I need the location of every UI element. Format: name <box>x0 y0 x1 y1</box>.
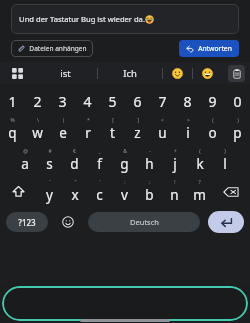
button[interactable]: Dateien anhängen <box>11 40 93 57</box>
staticText: 5 <box>108 92 117 111</box>
button[interactable]: ?123 <box>6 212 48 232</box>
button[interactable]: ] <box>125 114 150 145</box>
staticText: n <box>170 186 179 204</box>
staticText: : <box>124 179 126 186</box>
button[interactable]: \ <box>25 114 50 145</box>
button[interactable]: 5 <box>100 88 125 114</box>
button[interactable]: 1 <box>0 88 25 114</box>
button[interactable]: ( <box>187 145 212 176</box>
button[interactable]: 8 <box>175 88 200 114</box>
button[interactable]: Emoji keyboard <box>48 211 88 233</box>
button[interactable]: 7 <box>150 88 175 114</box>
staticText: 3 <box>58 92 67 111</box>
button[interactable]: Backspace <box>212 176 250 207</box>
button[interactable]: ( <box>200 114 225 145</box>
button[interactable]: : <box>112 176 137 207</box>
button[interactable]: Emoji slightly smiling <box>163 62 192 84</box>
staticText: 9 <box>208 92 217 111</box>
button[interactable]: Enter <box>208 211 244 233</box>
button[interactable]: < <box>150 114 175 145</box>
staticText: u <box>158 124 167 142</box>
staticText: k <box>196 155 204 173</box>
staticText: + <box>174 148 177 155</box>
button[interactable]: * <box>75 114 100 145</box>
button[interactable]: 3 <box>50 88 75 114</box>
button[interactable]: Shift <box>0 176 37 207</box>
button[interactable]: - <box>137 145 162 176</box>
staticText: r <box>85 124 91 142</box>
button[interactable]: Ich <box>98 62 162 84</box>
staticText: Und der Tastatur Bug ist wieder da. <box>19 14 145 24</box>
staticText: 2 <box>33 92 42 111</box>
button[interactable]: 9 <box>200 88 225 114</box>
button[interactable]: | <box>50 114 75 145</box>
button[interactable]: 4 <box>75 88 100 114</box>
staticText: x <box>71 186 79 204</box>
button[interactable]: ` <box>37 176 62 207</box>
staticText: ( <box>199 148 201 155</box>
staticText: ? <box>198 179 201 186</box>
staticText: [ <box>112 117 114 124</box>
button[interactable]: 0 <box>225 88 250 114</box>
staticText: q <box>8 124 17 142</box>
staticText: | <box>62 117 65 124</box>
button[interactable]: € <box>62 145 87 176</box>
button[interactable]: ) <box>212 145 237 176</box>
staticText: > <box>187 117 190 124</box>
button[interactable]: ) <box>225 114 250 145</box>
staticText: & <box>123 148 127 155</box>
button[interactable]: Deutsch <box>88 212 200 232</box>
staticText: i <box>186 124 190 142</box>
button[interactable]: & <box>112 145 137 176</box>
staticText: ] <box>137 117 139 124</box>
button[interactable]: Apps <box>0 62 34 84</box>
staticText: h <box>145 155 154 173</box>
staticText: ) <box>237 117 239 124</box>
staticText: Antworten <box>198 44 232 53</box>
staticText: € <box>73 148 76 155</box>
button[interactable]: > <box>175 114 200 145</box>
staticText: 7 <box>158 92 167 111</box>
staticText: Dateien anhängen <box>29 44 87 53</box>
staticText: ist <box>60 67 71 80</box>
button[interactable]: ? <box>187 176 212 207</box>
staticText: j <box>173 155 177 173</box>
button[interactable]: _ <box>87 145 112 176</box>
staticText: ! <box>174 179 176 186</box>
button[interactable]: " <box>62 176 87 207</box>
staticText: \ <box>37 117 39 124</box>
staticText: t <box>110 124 115 142</box>
button[interactable]: Clipboard <box>222 62 250 84</box>
staticText: - <box>149 148 151 155</box>
button[interactable]: Antworten <box>179 40 239 57</box>
button[interactable]: + <box>162 145 187 176</box>
staticText: 4 <box>83 92 92 111</box>
staticText: % <box>10 117 15 124</box>
staticText: l <box>223 155 227 173</box>
staticText: Deutsch <box>130 217 159 227</box>
button[interactable]: ; <box>137 176 162 207</box>
staticText: _ <box>98 148 101 155</box>
button[interactable]: 6 <box>125 88 150 114</box>
staticText: ` <box>49 179 51 186</box>
staticText: " <box>74 179 77 186</box>
staticText: c <box>96 186 103 204</box>
staticText: ) <box>224 148 226 155</box>
staticText: m <box>193 186 206 204</box>
button[interactable]: % <box>0 114 25 145</box>
button[interactable]: @ <box>12 145 37 176</box>
staticText: 0 <box>233 92 242 111</box>
staticText: 8 <box>183 92 192 111</box>
staticText: ?123 <box>18 217 36 228</box>
button[interactable]: Emoji grinning <box>193 62 222 84</box>
button[interactable]: 2 <box>25 88 50 114</box>
button[interactable]: ! <box>162 176 187 207</box>
staticText: e <box>59 124 67 142</box>
button[interactable]: ist <box>34 62 97 84</box>
staticText: g <box>120 155 129 173</box>
staticText: a <box>21 155 29 173</box>
button[interactable]: [ <box>100 114 125 145</box>
button[interactable]: # <box>37 145 62 176</box>
button[interactable]: ' <box>87 176 112 207</box>
button[interactable]: Und der Tastatur Bug ist wieder da. <box>11 4 239 34</box>
